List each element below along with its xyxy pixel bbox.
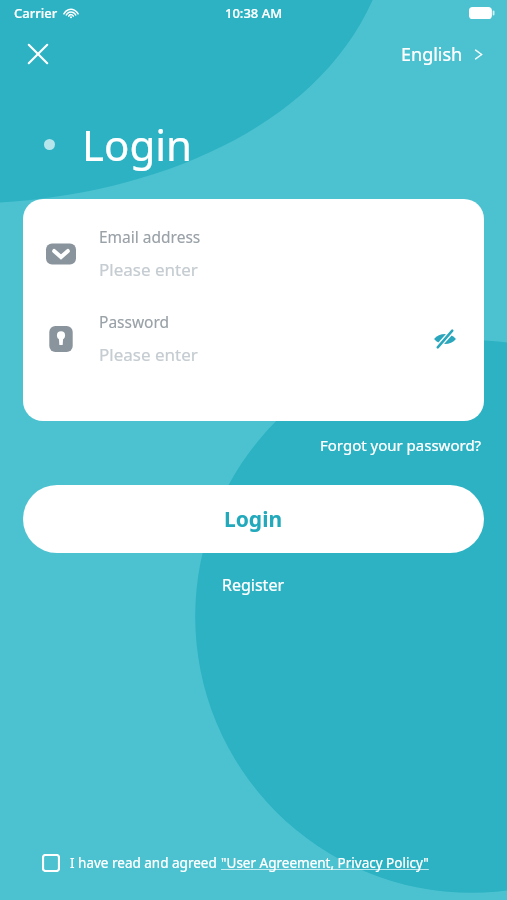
staticText: Register bbox=[222, 574, 285, 596]
button[interactable]: Login bbox=[23, 485, 484, 553]
button[interactable]: English bbox=[397, 36, 489, 73]
staticText: 10:38 AM bbox=[225, 4, 283, 22]
button[interactable]: Show password bbox=[428, 322, 462, 356]
staticText: "User Agreement, Privacy Policy" bbox=[221, 854, 429, 872]
staticText: Please enter bbox=[99, 343, 198, 366]
button[interactable]: Email address bbox=[23, 226, 484, 281]
staticText: Email address bbox=[99, 226, 201, 247]
button[interactable]: "User Agreement, Privacy Policy" bbox=[221, 854, 429, 872]
staticText: Login bbox=[82, 116, 193, 173]
staticText: Carrier bbox=[14, 4, 58, 22]
staticText: Password bbox=[99, 311, 170, 332]
staticText: English bbox=[401, 42, 463, 67]
button[interactable]: Register bbox=[212, 569, 295, 601]
button[interactable]: Forgot your password? bbox=[318, 431, 484, 459]
button[interactable]: Agree to terms bbox=[42, 854, 60, 872]
staticText: Forgot your password? bbox=[320, 435, 482, 455]
button[interactable]: Password bbox=[23, 311, 484, 366]
staticText: Login bbox=[224, 505, 283, 534]
staticText: Please enter bbox=[99, 258, 198, 281]
staticText: I have read and agreed bbox=[70, 854, 221, 872]
button[interactable]: Close bbox=[18, 34, 58, 74]
